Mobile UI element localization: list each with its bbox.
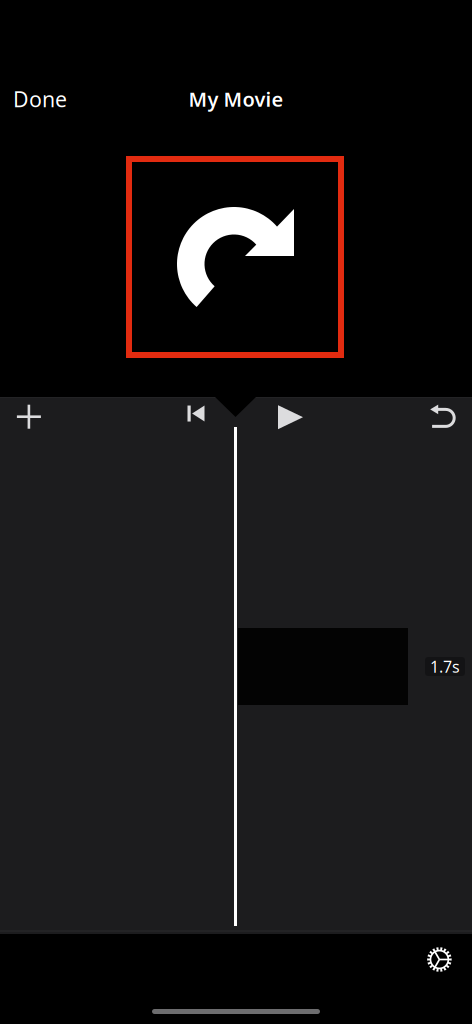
- button[interactable]: Skip to start: [181, 398, 211, 428]
- button[interactable]: Undo: [426, 399, 460, 433]
- button[interactable]: Settings: [422, 942, 456, 976]
- button[interactable]: Done: [0, 80, 77, 118]
- staticText: 1.7s: [430, 656, 460, 677]
- button[interactable]: Play: [273, 400, 307, 434]
- staticText: Done: [13, 85, 67, 113]
- staticText: My Movie: [188, 86, 283, 112]
- button[interactable]: Add media: [12, 400, 46, 434]
